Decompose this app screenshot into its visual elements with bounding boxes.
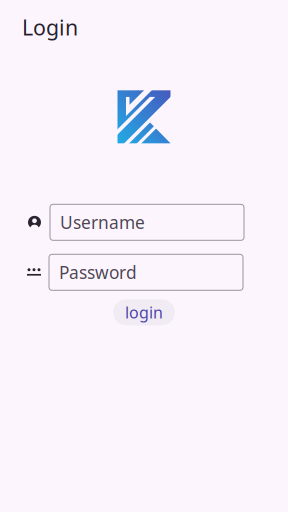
staticText: Username [60,211,145,234]
staticText: Password [59,261,137,284]
button[interactable]: Username [50,204,244,240]
staticText: login [125,302,163,323]
button[interactable]: Password [49,254,243,290]
button[interactable]: login [113,299,175,325]
staticText: Login [22,13,78,41]
